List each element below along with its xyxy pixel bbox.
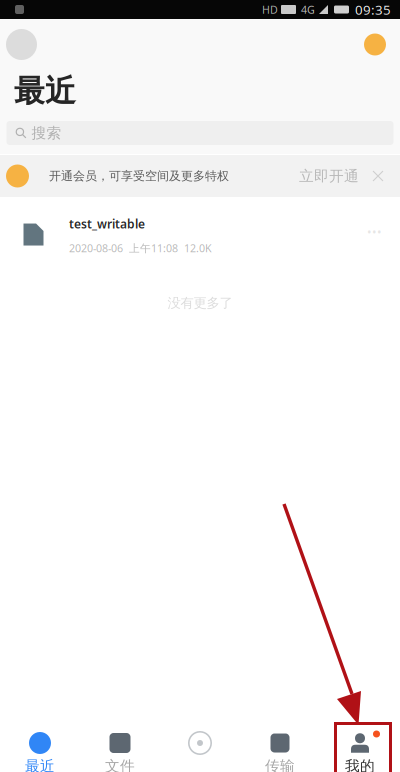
staticText: 搜索 xyxy=(31,124,61,142)
button[interactable]: Account xyxy=(6,29,37,60)
staticText: test_writable xyxy=(69,216,145,232)
staticText: 开通会员，可享受空间及更多特权 xyxy=(49,169,229,183)
staticText: HD xyxy=(262,2,278,17)
button[interactable]: 立即开通 xyxy=(299,167,359,185)
staticText: 没有更多了 xyxy=(167,295,232,311)
staticText: 2020-08-06 上午11:08 12.0K xyxy=(69,241,212,255)
button[interactable]: 我的 xyxy=(320,716,400,772)
button[interactable]: test_writable xyxy=(0,197,400,269)
button[interactable]: 文件 xyxy=(80,716,160,772)
button[interactable]: Membership xyxy=(364,33,386,55)
button[interactable]: 最近 xyxy=(0,716,80,772)
staticText: 最近 xyxy=(14,72,76,110)
button[interactable]: 传输 xyxy=(240,716,320,772)
staticText: 传输 xyxy=(265,757,295,772)
staticText: 我的 xyxy=(345,757,375,772)
staticText: ••• xyxy=(367,224,382,240)
staticText: 立即开通 xyxy=(299,167,359,185)
staticText: 09:35 xyxy=(355,1,391,18)
staticText: 文件 xyxy=(105,757,135,772)
button[interactable]: Dismiss xyxy=(359,163,383,189)
button[interactable] xyxy=(160,716,240,772)
staticText: 最近 xyxy=(25,757,55,772)
staticText: 4G xyxy=(301,2,315,17)
